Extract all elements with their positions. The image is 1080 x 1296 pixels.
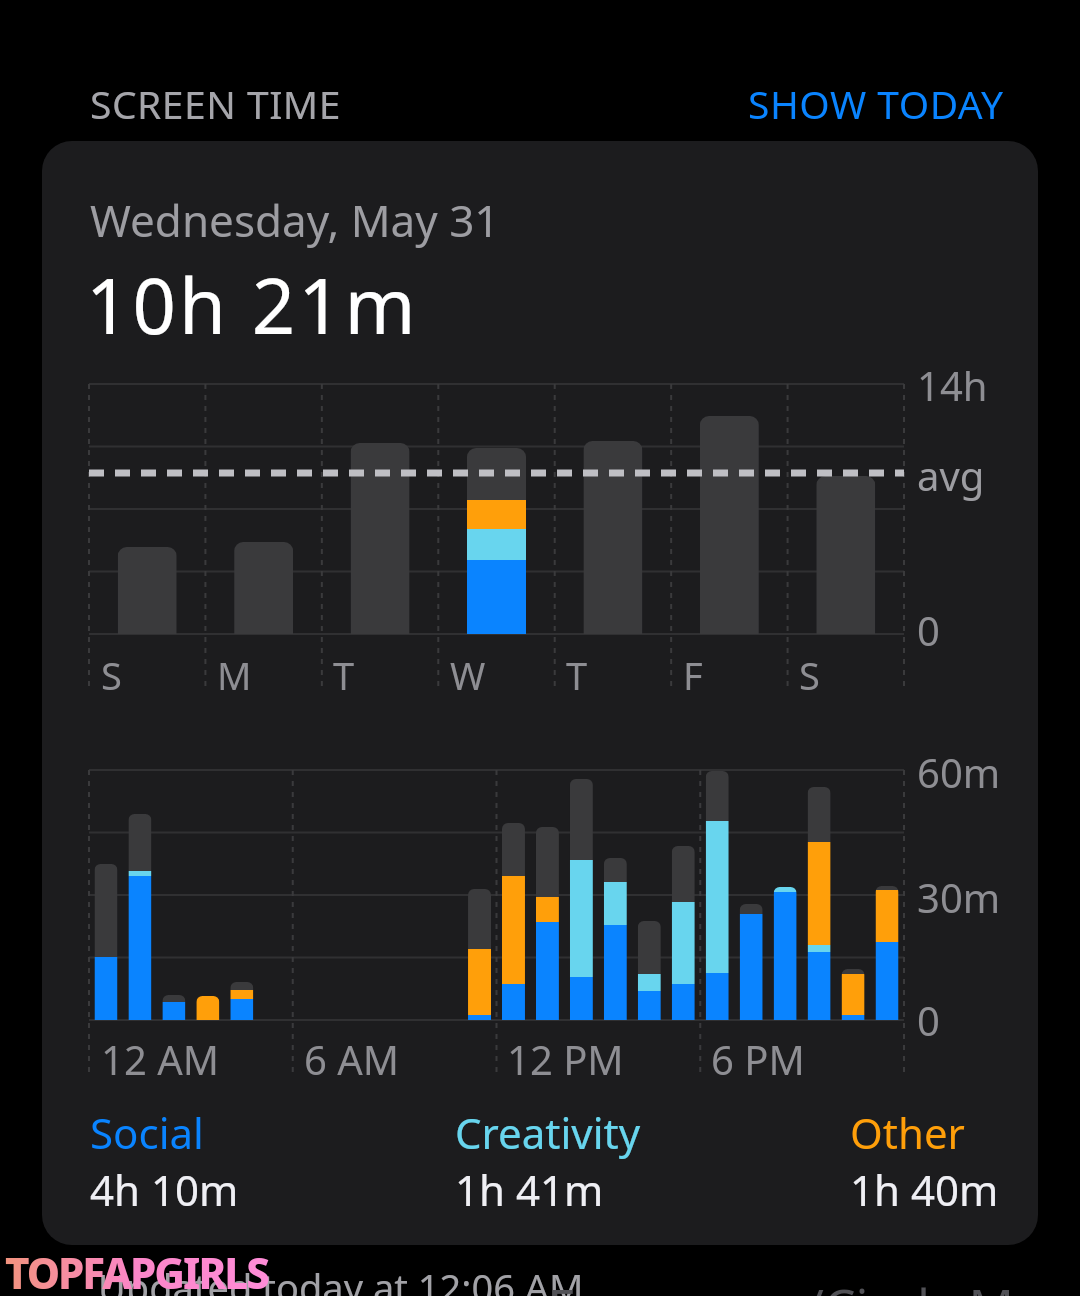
staticText: 0 [917,603,940,657]
staticText: Social [90,1104,204,1161]
staticText: 6 PM [711,1032,805,1086]
staticText: Facecam w/Cindy Mom 7 [548,1272,1080,1296]
staticText: 6 AM [304,1032,400,1086]
button[interactable]: SHOW TODAY [748,77,1004,130]
staticText: 1h 41m [455,1161,604,1218]
staticText: M [217,649,252,701]
staticText: SHOW TODAY [748,77,1004,130]
staticText: TOPFAPGIRLS [5,1244,268,1296]
staticText: 12 AM [101,1032,219,1086]
staticText: 0 [917,993,940,1047]
staticText: 60m [917,745,1001,799]
staticText: 4h 10m [90,1161,239,1218]
staticText: S [799,649,820,701]
staticText: Updated today at 12:06 AM [98,1261,584,1296]
staticText: Other [850,1104,965,1161]
staticText: SCREEN TIME [90,77,341,130]
staticText: W [450,649,486,701]
staticText: Wednesday, May 31 [90,190,500,250]
staticText: avg [917,448,985,502]
staticText: 12 PM [507,1032,624,1086]
staticText: Creativity [455,1104,641,1161]
staticText: 30m [917,870,1001,924]
staticText: T [566,649,588,701]
staticText: S [101,649,122,701]
staticText: 1h 40m [850,1161,999,1218]
staticText: 10h 21m [86,253,419,357]
staticText: 14h [917,358,988,412]
staticText: T [333,649,355,701]
staticText: F [683,649,703,701]
